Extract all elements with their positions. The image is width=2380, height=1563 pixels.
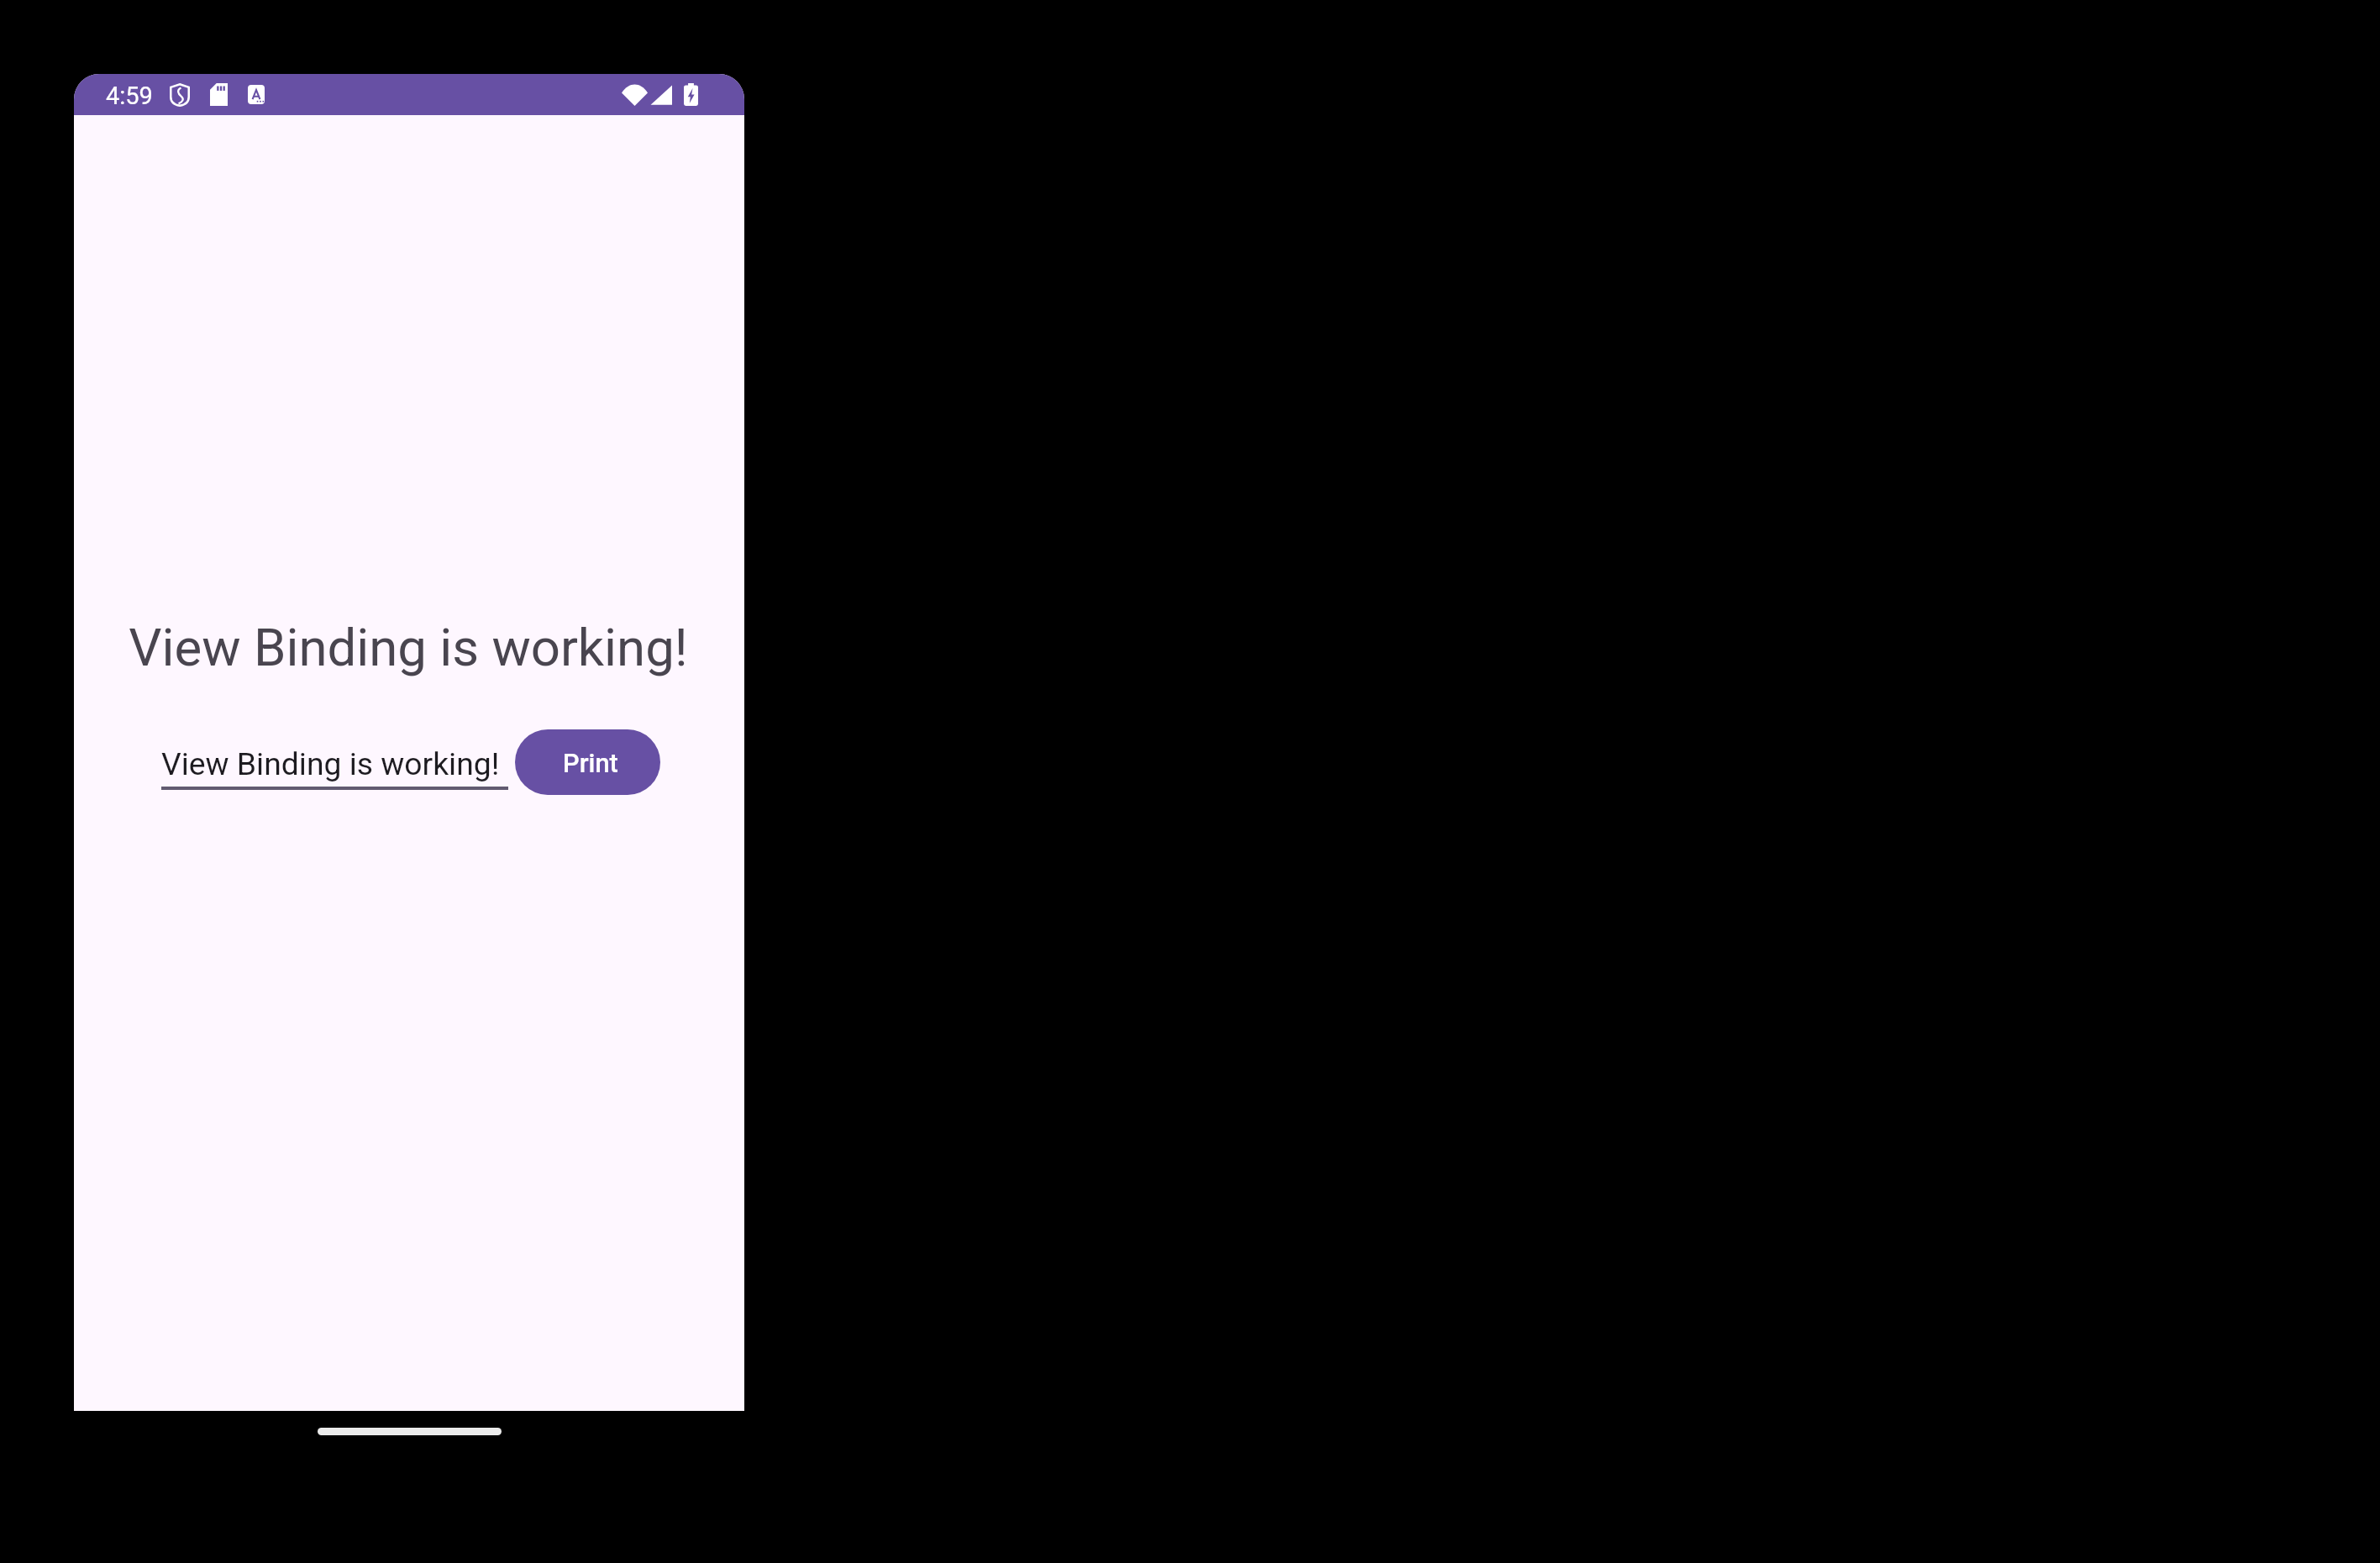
other: Wi-Fi: [622, 84, 648, 106]
other: SD card: [210, 83, 228, 106]
button[interactable]: Print: [515, 729, 660, 795]
other: Mobile signal: [650, 84, 672, 106]
other: Battery charging: [684, 83, 698, 106]
other: Captions: [248, 85, 265, 104]
other: Security: [170, 83, 190, 107]
staticText: Print: [563, 748, 618, 778]
button[interactable]: View Binding is working!: [161, 746, 508, 790]
staticText: View Binding is working!: [74, 618, 743, 678]
staticText: View Binding is working!: [161, 745, 500, 782]
staticText: 4:59: [106, 82, 153, 110]
